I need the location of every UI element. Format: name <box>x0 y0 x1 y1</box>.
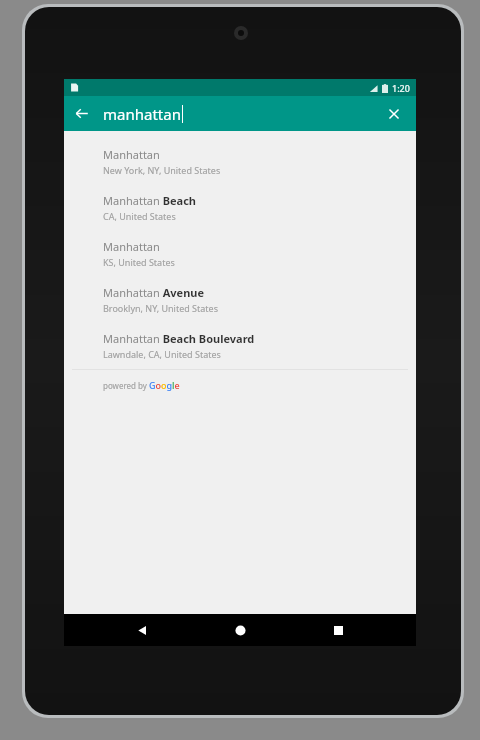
staticText: Lawndale, CA, United States <box>103 348 221 360</box>
button[interactable]: Home <box>220 614 260 646</box>
staticText: 1:20 <box>392 82 410 94</box>
button[interactable]: Manhattan <box>64 139 416 185</box>
button[interactable]: Manhattan Beach Boulevard <box>64 323 416 369</box>
staticText: New York, NY, United States <box>103 164 221 176</box>
button[interactable]: Back <box>122 614 162 646</box>
staticText: Manhattan Beach <box>103 193 196 208</box>
staticText: manhattan <box>103 104 181 124</box>
button[interactable]: Back <box>64 96 99 131</box>
button[interactable]: Recent apps <box>318 614 358 646</box>
staticText: Manhattan Avenue <box>103 285 205 300</box>
button[interactable]: Manhattan Avenue <box>64 277 416 323</box>
button[interactable]: Manhattan <box>64 231 416 277</box>
staticText: Manhattan <box>103 147 160 162</box>
staticText: powered by <box>103 380 149 391</box>
staticText: Manhattan <box>103 239 160 254</box>
staticText: Brooklyn, NY, United States <box>103 302 218 314</box>
button[interactable]: Manhattan Beach <box>64 185 416 231</box>
staticText: CA, United States <box>103 210 176 222</box>
staticText: Manhattan Beach Boulevard <box>103 331 255 346</box>
staticText: Google <box>149 379 180 391</box>
staticText: KS, United States <box>103 256 175 268</box>
button[interactable]: Clear search <box>376 96 411 131</box>
